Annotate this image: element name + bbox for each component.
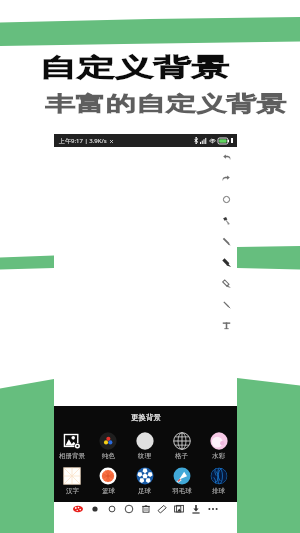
button[interactable]: 纯色	[90, 432, 126, 460]
button[interactable]: Undo	[215, 147, 237, 168]
button[interactable]: 相册背景	[54, 432, 90, 460]
staticText: 足球	[138, 487, 151, 495]
staticText: 格子	[175, 452, 188, 460]
button[interactable]: Pen	[215, 231, 237, 252]
button[interactable]: Marker	[215, 210, 237, 231]
button[interactable]: Eraser	[155, 502, 169, 516]
button[interactable]: Circle	[105, 502, 119, 516]
button[interactable]: Eraser	[215, 273, 237, 294]
button[interactable]: Palette	[71, 502, 85, 516]
staticText: 纯色	[102, 452, 115, 460]
button[interactable]: Redo	[215, 168, 237, 189]
button[interactable]: 汉字	[54, 467, 90, 495]
button[interactable]: Delete	[139, 502, 153, 516]
staticText: 纹理	[138, 452, 151, 460]
staticText: 上午9:17 | 3.9K/s	[59, 137, 107, 145]
staticText: 水彩	[212, 452, 225, 460]
button[interactable]: 排球	[200, 467, 237, 495]
button[interactable]: Layers	[172, 502, 186, 516]
staticText: 丰富的自定义背景	[45, 92, 287, 117]
button[interactable]: Pencil	[215, 252, 237, 273]
button[interactable]: Download	[189, 502, 203, 516]
staticText: 更换背景	[131, 413, 161, 422]
button[interactable]: 羽毛球	[163, 467, 200, 495]
staticText: 自定义背景	[39, 53, 229, 83]
button[interactable]: 格子	[163, 432, 200, 460]
staticText: 排球	[212, 487, 225, 495]
button[interactable]: Circle outline	[122, 502, 136, 516]
staticText: 汉字	[66, 487, 79, 495]
button[interactable]: 纹理	[126, 432, 163, 460]
button[interactable]: More	[206, 502, 220, 516]
button[interactable]: 足球	[126, 467, 163, 495]
button[interactable]: Text	[215, 315, 237, 336]
button[interactable]: Shapes	[215, 189, 237, 210]
staticText: 羽毛球	[172, 487, 192, 495]
button[interactable]: Thin pen	[215, 294, 237, 315]
button[interactable]: Black	[88, 502, 102, 516]
staticText: 相册背景	[59, 452, 85, 460]
button[interactable]: 水彩	[200, 432, 237, 460]
button[interactable]: 篮球	[90, 467, 126, 495]
staticText: 篮球	[102, 487, 115, 495]
